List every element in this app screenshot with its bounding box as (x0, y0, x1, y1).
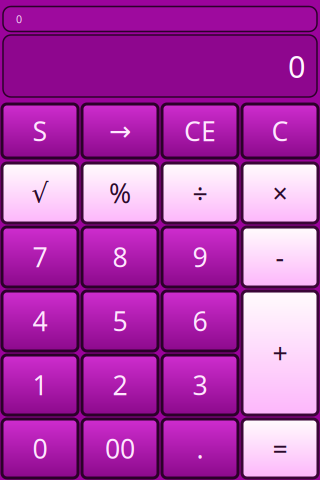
staticText: 0 (32, 431, 47, 466)
staticText: 7 (32, 239, 47, 275)
staticText: → (109, 116, 131, 146)
button[interactable]: 2 (80, 353, 160, 417)
staticText: 6 (192, 303, 207, 339)
button[interactable]: √ (0, 161, 80, 225)
button[interactable]: × (240, 161, 320, 225)
button[interactable]: 0 (0, 417, 80, 480)
staticText: 8 (112, 239, 127, 275)
button[interactable]: + (240, 289, 320, 417)
button[interactable]: C (240, 102, 320, 160)
staticText: ÷ (192, 175, 207, 211)
button[interactable]: % (80, 161, 160, 225)
button[interactable]: S (0, 102, 80, 160)
staticText: 1 (32, 367, 47, 403)
staticText: 9 (192, 239, 207, 275)
staticText: C (271, 113, 288, 149)
staticText: 0 (288, 46, 306, 86)
button[interactable]: 7 (0, 225, 80, 289)
staticText: 0 (16, 12, 22, 26)
staticText: % (109, 175, 131, 211)
button[interactable]: 6 (160, 289, 240, 353)
staticText: + (272, 335, 287, 371)
button[interactable]: . (160, 417, 240, 480)
staticText: - (275, 239, 284, 275)
staticText: √ (31, 178, 48, 208)
staticText: 00 (105, 431, 135, 466)
button[interactable]: 3 (160, 353, 240, 417)
staticText: × (272, 175, 287, 211)
button[interactable]: → (80, 102, 160, 160)
button[interactable]: 5 (80, 289, 160, 353)
button[interactable]: = (240, 417, 320, 480)
staticText: CE (184, 113, 216, 149)
staticText: S (32, 113, 47, 149)
button[interactable]: 00 (80, 417, 160, 480)
staticText: = (272, 431, 287, 466)
staticText: 4 (32, 303, 47, 339)
staticText: . (196, 431, 203, 466)
button[interactable]: 8 (80, 225, 160, 289)
button[interactable]: 4 (0, 289, 80, 353)
staticText: 5 (112, 303, 127, 339)
button[interactable]: 1 (0, 353, 80, 417)
button[interactable]: - (240, 225, 320, 289)
button[interactable]: ÷ (160, 161, 240, 225)
button[interactable]: 9 (160, 225, 240, 289)
button[interactable]: CE (160, 102, 240, 160)
staticText: 3 (192, 367, 207, 403)
staticText: 2 (112, 367, 127, 403)
